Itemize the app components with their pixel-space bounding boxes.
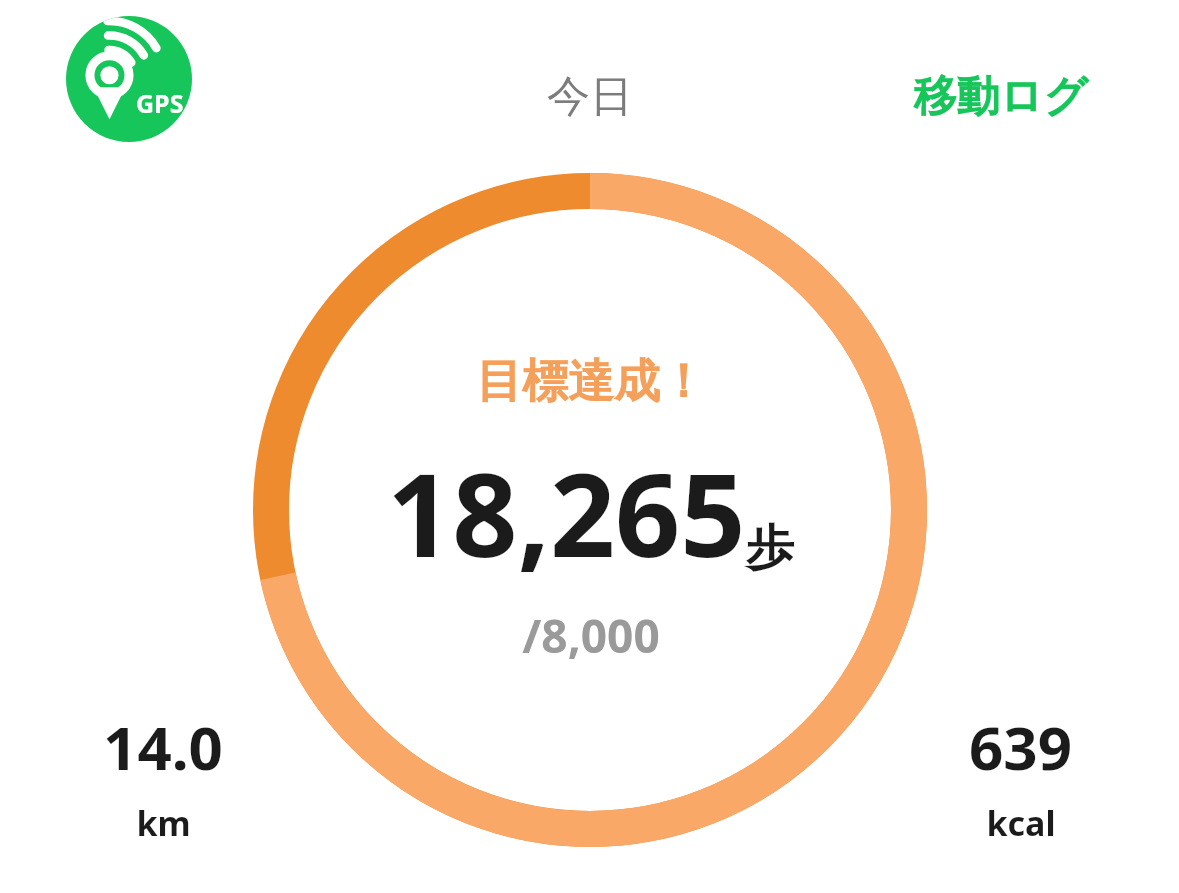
staticText: kcal	[986, 800, 1056, 846]
staticText: 639	[969, 706, 1072, 788]
button[interactable]: 14.0	[50, 706, 275, 856]
staticText: GPS	[136, 86, 184, 120]
button[interactable]: 移動ログ	[880, 58, 1120, 136]
button[interactable]: 今日	[490, 58, 690, 136]
staticText: /8,000	[522, 604, 660, 667]
staticText: 歩	[746, 518, 794, 578]
button[interactable]: GPS	[66, 16, 192, 142]
staticText: 目標達成！	[476, 353, 706, 411]
staticText: 18,265	[387, 435, 746, 590]
button[interactable]: 目標達成！	[253, 173, 927, 847]
staticText: 移動ログ	[913, 70, 1088, 124]
staticText: km	[136, 800, 191, 846]
button[interactable]: 639	[908, 706, 1133, 856]
staticText: 今日	[547, 70, 633, 124]
staticText: 14.0	[103, 706, 223, 788]
